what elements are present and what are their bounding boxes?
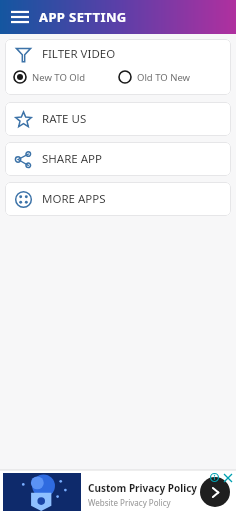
button[interactable]: FILTER VIDEO	[5, 39, 231, 95]
button[interactable]: Old TO New	[118, 70, 191, 84]
button[interactable]: Advertisement: Custom Privacy Policy	[0, 470, 236, 512]
staticText: FILTER VIDEO	[42, 46, 116, 62]
staticText: Website Privacy Policy	[88, 497, 171, 508]
button[interactable]: Close ad	[222, 472, 233, 483]
staticText: Custom Privacy Policy	[88, 481, 198, 495]
button[interactable]: Ad info	[209, 472, 220, 483]
button[interactable]: Open navigation menu	[7, 4, 33, 30]
staticText: RATE US	[42, 111, 87, 127]
staticText: Old TO New	[137, 71, 191, 84]
button[interactable]: Open ad	[200, 477, 230, 507]
button[interactable]: RATE US	[5, 102, 231, 136]
button[interactable]: New TO Old	[13, 70, 118, 84]
staticText: MORE APPS	[42, 191, 106, 207]
button[interactable]: MORE APPS	[5, 182, 231, 216]
staticText: SHARE APP	[42, 151, 102, 167]
staticText: APP SETTING	[39, 8, 127, 26]
button[interactable]: SHARE APP	[5, 142, 231, 176]
staticText: New TO Old	[32, 71, 86, 84]
